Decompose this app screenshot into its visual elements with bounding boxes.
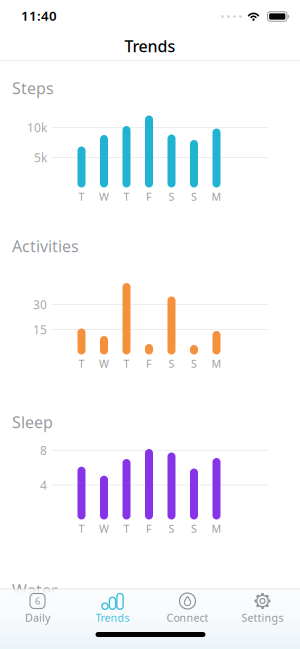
staticText: T	[123, 189, 129, 204]
staticText: 10k	[27, 119, 47, 135]
button[interactable]: Connect	[150, 589, 224, 631]
staticText: T	[78, 356, 84, 371]
staticText: S	[168, 189, 174, 204]
button[interactable]: Sleep	[0, 408, 300, 535]
staticText: Water	[12, 579, 58, 601]
staticText: Trends	[124, 35, 175, 57]
staticText: S	[168, 521, 174, 536]
staticText: M	[211, 356, 221, 371]
button[interactable]: 6	[0, 589, 74, 631]
staticText: S	[191, 356, 197, 371]
staticText: 8	[40, 442, 47, 458]
staticText: T	[78, 521, 84, 536]
staticText: W	[99, 356, 109, 371]
staticText: 30	[33, 296, 47, 312]
staticText: Daily	[25, 610, 50, 625]
staticText: S	[168, 356, 174, 371]
staticText: 11:40	[21, 7, 57, 24]
staticText: S	[191, 189, 197, 204]
staticText: T	[78, 189, 84, 204]
staticText: 15	[33, 321, 47, 337]
staticText: Connect	[166, 610, 208, 625]
staticText: 4	[40, 477, 47, 493]
staticText: Sleep	[12, 411, 53, 433]
button[interactable]: Settings	[225, 589, 299, 631]
staticText: Settings	[241, 610, 283, 625]
staticText: Activities	[12, 235, 79, 257]
button[interactable]: Steps	[0, 70, 300, 203]
button[interactable]: Trends	[75, 589, 149, 631]
staticText: M	[211, 521, 221, 536]
staticText: S	[191, 521, 197, 536]
staticText: 6	[35, 595, 40, 607]
staticText: W	[99, 521, 109, 536]
staticText: F	[146, 189, 152, 204]
staticText: 5k	[34, 149, 47, 165]
staticText: Steps	[12, 77, 54, 99]
button[interactable]: Activities	[0, 232, 300, 370]
staticText: M	[211, 189, 221, 204]
staticText: F	[146, 521, 152, 536]
staticText: Trends	[95, 610, 129, 625]
staticText: W	[99, 189, 109, 204]
staticText: F	[146, 356, 152, 371]
staticText: T	[123, 521, 129, 536]
staticText: T	[123, 356, 129, 371]
